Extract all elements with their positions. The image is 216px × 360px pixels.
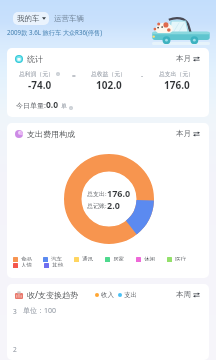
other: Car illustration xyxy=(152,15,210,45)
staticText: -74.0 xyxy=(28,78,52,92)
staticText: 统计 xyxy=(27,54,43,64)
staticText: 支出 xyxy=(124,291,137,299)
staticText: 收/支变换趋势 xyxy=(27,289,79,300)
staticText: 3 xyxy=(13,307,17,316)
staticText: 人情 xyxy=(21,262,33,267)
staticText: 176.0 xyxy=(107,187,131,199)
staticText: 总支出: xyxy=(87,190,107,198)
button[interactable]: 运营车辆 xyxy=(53,12,85,25)
button[interactable]: 我的车 xyxy=(13,12,49,25)
staticText: 2009款 3.6L 旅行车 大众R36(停售) xyxy=(7,28,103,36)
staticText: 支出费用构成 xyxy=(27,129,75,139)
staticText: - xyxy=(141,71,144,80)
button[interactable]: 本月 xyxy=(174,52,202,65)
staticText: 通讯 xyxy=(82,256,94,261)
staticText: 运营车辆 xyxy=(54,14,84,23)
staticText: 总收益（元） xyxy=(91,70,126,77)
staticText: = xyxy=(72,71,76,80)
staticText: 医疗 xyxy=(175,256,187,261)
staticText: 总记账: xyxy=(87,202,107,210)
staticText: 本月 xyxy=(176,54,191,63)
staticText: 今日单量: xyxy=(16,101,46,111)
staticText: 单 xyxy=(61,102,67,110)
staticText: 汽车 xyxy=(51,256,63,261)
staticText: 本月 xyxy=(176,129,191,138)
staticText: 0.0 xyxy=(46,99,59,111)
staticText: 总支出（元） xyxy=(159,70,194,77)
button[interactable]: 本月 xyxy=(174,127,202,140)
staticText: 2.0 xyxy=(107,199,120,211)
staticText: 休闲 xyxy=(144,256,156,261)
staticText: 102.0 xyxy=(96,78,122,92)
staticText: 其他 xyxy=(52,262,64,267)
staticText: 单位：100 xyxy=(23,306,57,316)
staticText: 本周 xyxy=(176,290,191,299)
button[interactable]: 本周 xyxy=(174,288,202,301)
staticText: 2 xyxy=(13,345,17,354)
staticText: 食品 xyxy=(21,256,33,261)
staticText: 总利润（元） xyxy=(19,70,54,77)
staticText: 收入 xyxy=(101,291,114,299)
staticText: 居家 xyxy=(113,256,125,261)
staticText: 176.0 xyxy=(164,78,190,92)
staticText: 我的车 xyxy=(17,14,40,23)
